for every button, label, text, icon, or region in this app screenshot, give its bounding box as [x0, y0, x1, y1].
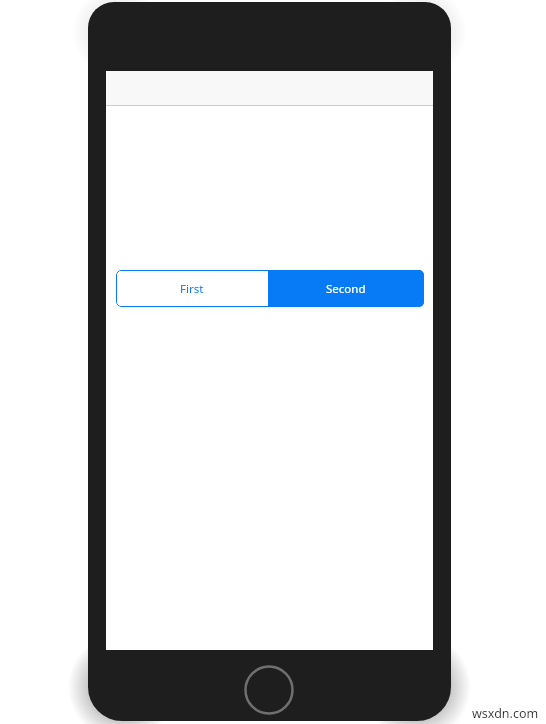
staticText: Second [326, 281, 366, 297]
staticText: First [180, 281, 204, 297]
button[interactable]: Second [268, 270, 424, 307]
staticText: wsxdn.com [472, 705, 539, 722]
button[interactable]: First [116, 270, 268, 307]
